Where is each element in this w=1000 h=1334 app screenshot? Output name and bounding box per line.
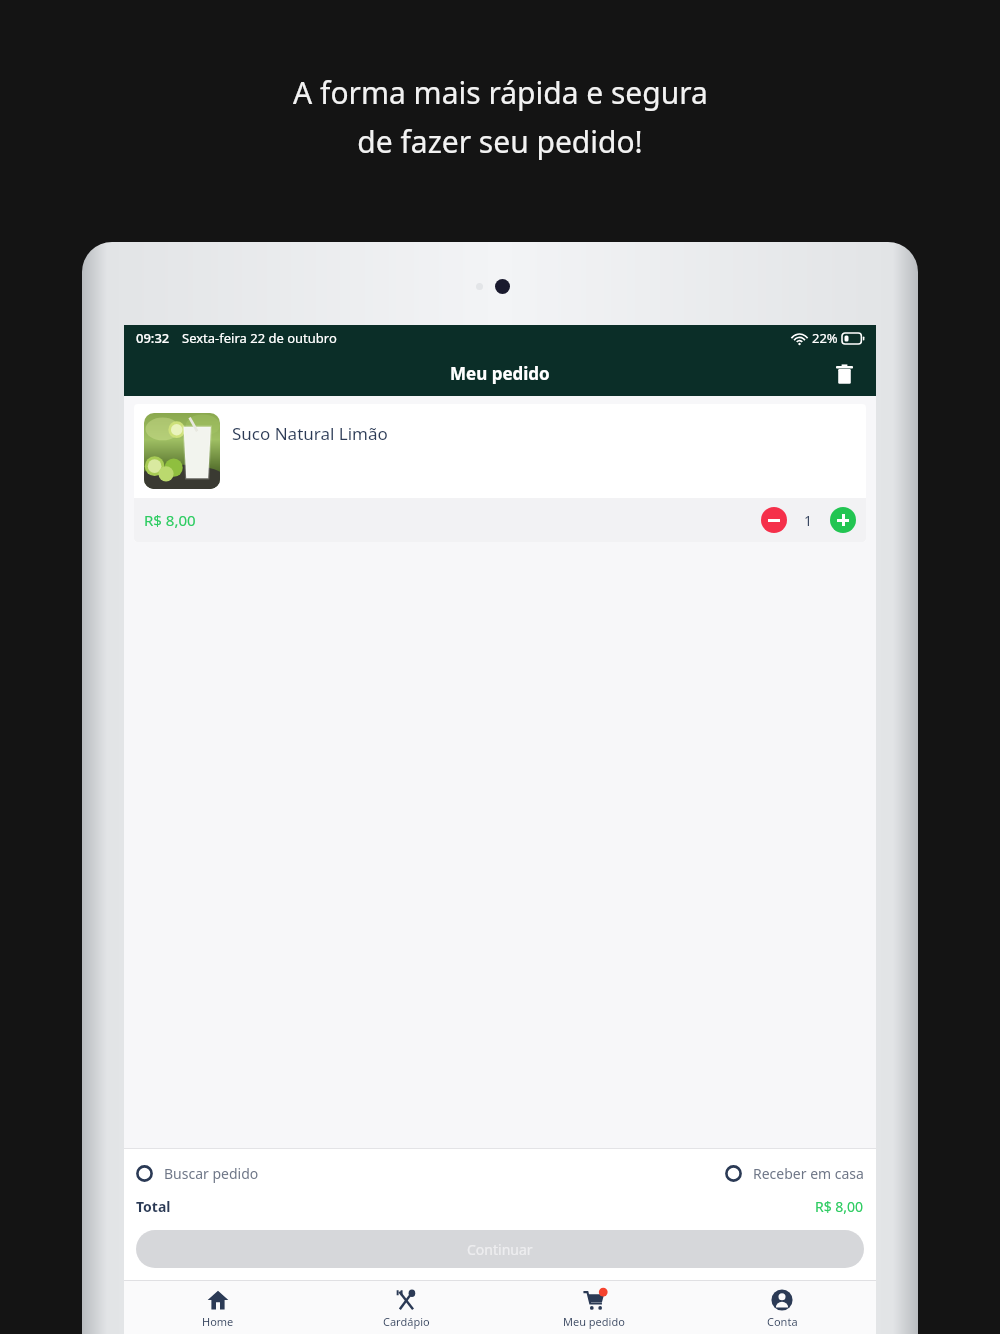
button[interactable]: Suco Natural Limão — [134, 404, 866, 542]
button[interactable]: Aumentar — [830, 507, 856, 533]
staticText: Total — [136, 1197, 171, 1216]
button[interactable]: Meu pedido — [500, 1281, 688, 1334]
staticText: Buscar pedido — [164, 1164, 259, 1183]
staticText: 09:32 — [136, 329, 170, 347]
staticText: R$ 8,00 — [144, 510, 196, 530]
button[interactable]: Cardápio — [312, 1281, 500, 1334]
staticText: Conta — [767, 1314, 798, 1329]
staticText: A forma mais rápida e segura — [293, 72, 708, 113]
button[interactable]: Conta — [688, 1281, 876, 1334]
staticText: Home — [202, 1314, 234, 1329]
button[interactable]: Home — [124, 1281, 312, 1334]
button[interactable]: Receber em casa — [725, 1164, 864, 1183]
button[interactable]: Excluir pedido — [824, 354, 864, 394]
button[interactable]: Diminuir — [761, 507, 787, 533]
staticText: Sexta-feira 22 de outubro — [182, 329, 337, 347]
button[interactable]: Continuar — [136, 1230, 864, 1268]
staticText: Suco Natural Limão — [232, 422, 388, 445]
staticText: de fazer seu pedido! — [357, 121, 643, 162]
staticText: Receber em casa — [753, 1164, 864, 1183]
button[interactable]: Buscar pedido — [136, 1164, 259, 1183]
staticText: 22% — [812, 329, 838, 347]
staticText: Meu pedido — [450, 362, 550, 385]
staticText: 1 — [804, 511, 813, 530]
staticText: Cardápio — [383, 1314, 430, 1329]
staticText: Continuar — [467, 1240, 533, 1259]
staticText: R$ 8,00 — [815, 1197, 864, 1216]
staticText: Meu pedido — [563, 1314, 625, 1329]
